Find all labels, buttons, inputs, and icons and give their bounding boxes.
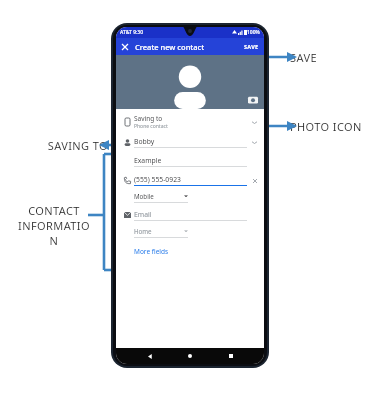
- button[interactable]: Example: [120, 154, 259, 168]
- staticText: More fields: [134, 247, 169, 256]
- button[interactable]: Add photo: [247, 94, 259, 106]
- staticText: CONTACT: [28, 203, 80, 218]
- button[interactable]: Mobile: [134, 192, 188, 203]
- staticText: INFORMATION: [14, 218, 94, 248]
- staticText: Saving to: [134, 114, 163, 123]
- button[interactable]: Home: [183, 349, 197, 363]
- button[interactable]: More fields: [134, 246, 169, 257]
- staticText: Create new contact: [135, 42, 205, 52]
- staticText: Example: [134, 156, 162, 165]
- staticText: Home: [134, 227, 152, 235]
- staticText: SAVE: [290, 50, 317, 65]
- staticText: SAVE: [244, 43, 259, 50]
- button[interactable]: Saving to: [120, 113, 259, 131]
- button[interactable]: (555) 555-0923: [120, 173, 259, 187]
- button[interactable]: Recents: [224, 349, 238, 363]
- button[interactable]: Email: [120, 208, 259, 222]
- button[interactable]: Back: [143, 349, 157, 363]
- button[interactable]: Close: [119, 41, 130, 52]
- staticText: Email: [134, 210, 152, 219]
- staticText: Mobile: [134, 192, 154, 200]
- button[interactable]: Home: [134, 227, 188, 238]
- staticText: Bobby: [134, 137, 155, 146]
- button[interactable]: Clear: [250, 176, 259, 185]
- staticText: AT&T 9:30: [120, 29, 144, 36]
- staticText: (555) 555-0923: [134, 175, 181, 184]
- button[interactable]: Bobby: [120, 135, 259, 149]
- staticText: SAVING TO: [36, 138, 108, 153]
- staticText: Phone contact: [134, 123, 168, 130]
- staticText: 100%: [247, 29, 260, 36]
- staticText: PHOTO ICON: [290, 119, 362, 134]
- button[interactable]: SAVE: [242, 41, 261, 52]
